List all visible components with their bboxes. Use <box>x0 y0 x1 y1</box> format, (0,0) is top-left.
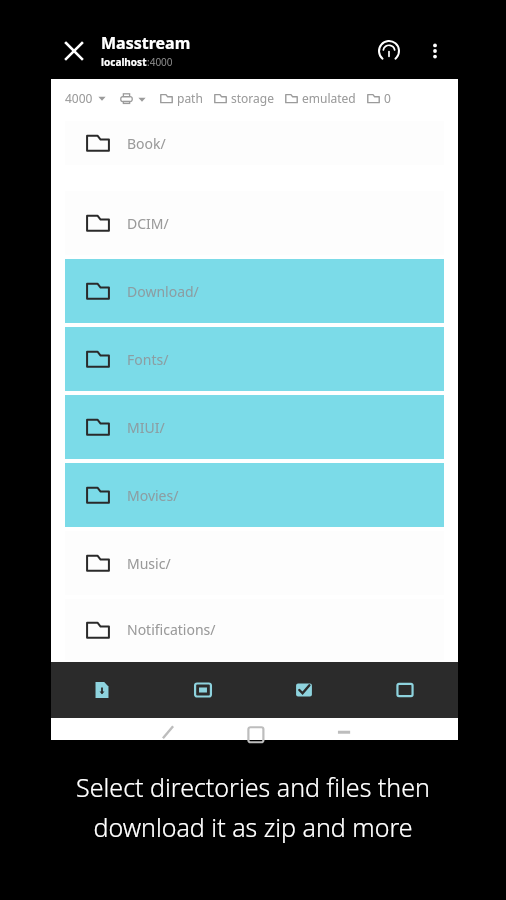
button[interactable]: 4000 <box>65 90 106 106</box>
button[interactable]: Music/ <box>65 531 444 595</box>
staticText: storage <box>231 90 274 106</box>
button[interactable]: Select all <box>253 662 354 718</box>
staticText: download it as zip and more <box>93 810 413 844</box>
staticText: localhost <box>101 55 147 69</box>
button[interactable]: path <box>160 90 203 106</box>
staticText: 0 <box>384 90 391 106</box>
button[interactable]: Notifications/ <box>65 599 444 660</box>
staticText: MIUI/ <box>127 418 165 437</box>
staticText: Notifications/ <box>127 620 216 639</box>
staticText: Select directories and files then <box>76 770 430 804</box>
button[interactable]: Movies/ <box>65 463 444 527</box>
staticText: Movies/ <box>127 486 179 505</box>
button[interactable]: DCIM/ <box>65 191 444 255</box>
button[interactable]: Download/ <box>65 259 444 323</box>
button[interactable]: Deselect all <box>354 662 455 718</box>
button[interactable]: Speed <box>370 32 408 70</box>
staticText: Download/ <box>127 282 199 301</box>
staticText: Music/ <box>127 554 171 573</box>
staticText: 4000 <box>65 90 93 106</box>
button[interactable]: emulated <box>285 90 356 106</box>
button[interactable]: Download file <box>51 662 152 718</box>
staticText: Fonts/ <box>127 350 169 369</box>
button[interactable]: Preview <box>152 662 253 718</box>
staticText: DCIM/ <box>127 214 169 233</box>
button[interactable]: 0 <box>367 90 391 106</box>
staticText: Book/ <box>127 134 166 153</box>
button[interactable]: MIUI/ <box>65 395 444 459</box>
staticText: path <box>177 90 203 106</box>
button[interactable]: storage <box>214 90 274 106</box>
staticText: :4000 <box>147 55 173 69</box>
button[interactable]: Fonts/ <box>65 327 444 391</box>
staticText: emulated <box>302 90 356 106</box>
button[interactable]: Book/ <box>65 121 444 165</box>
button[interactable]: More options <box>416 32 454 70</box>
button[interactable] <box>120 92 146 105</box>
button[interactable]: Close <box>56 33 92 69</box>
staticText: Masstream <box>101 32 191 54</box>
